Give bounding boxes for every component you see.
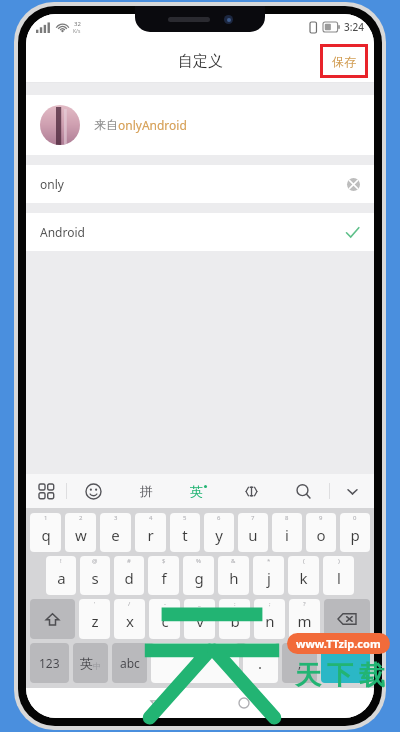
button[interactable]: 0: [340, 513, 370, 552]
button[interactable]: $: [148, 556, 179, 595]
button[interactable]: .: [243, 643, 278, 683]
button[interactable]: -: [149, 599, 180, 639]
button[interactable]: 8: [272, 513, 302, 552]
button[interactable]: *: [253, 556, 284, 595]
staticText: &: [231, 557, 236, 565]
staticText: 32: [74, 20, 81, 28]
button[interactable]: 5: [170, 513, 200, 552]
button[interactable]: 保存: [323, 47, 365, 75]
button[interactable]: 6: [204, 513, 234, 552]
staticText: u: [248, 525, 258, 545]
button[interactable]: only: [26, 165, 374, 203]
staticText: 5: [183, 514, 187, 522]
button[interactable]: &: [218, 556, 249, 595]
staticText: ': [94, 600, 96, 608]
staticText: a: [57, 568, 66, 588]
staticText: 载: [359, 659, 385, 692]
button[interactable]: Enter: [321, 643, 370, 683]
button[interactable]: ;: [254, 599, 285, 639]
staticText: :: [234, 600, 236, 608]
staticText: i: [285, 525, 289, 545]
button[interactable]: Input mode: [225, 474, 277, 508]
staticText: 保存: [332, 54, 356, 69]
staticText: Android: [40, 224, 85, 240]
staticText: ?: [303, 600, 306, 608]
button[interactable]: Keyboard menu: [26, 474, 66, 508]
staticText: g: [194, 568, 204, 588]
staticText: q: [41, 525, 51, 545]
staticText: @: [92, 557, 98, 565]
button[interactable]: 7: [238, 513, 268, 552]
staticText: h: [229, 568, 239, 588]
staticText: p: [350, 525, 360, 545]
staticText: ;: [269, 600, 271, 608]
staticText: b: [230, 611, 240, 631]
button[interactable]: ): [323, 556, 354, 595]
button[interactable]: ,: [282, 643, 317, 683]
staticText: r: [147, 525, 154, 545]
staticText: 8: [285, 514, 289, 522]
staticText: 3:24: [344, 20, 364, 34]
staticText: o: [316, 525, 326, 545]
button[interactable]: abc: [112, 643, 147, 683]
button[interactable]: Hide keyboard: [330, 474, 374, 508]
button[interactable]: 来自: [26, 95, 374, 155]
button[interactable]: Android: [26, 213, 374, 251]
button[interactable]: %: [183, 556, 214, 595]
staticText: n: [265, 611, 275, 631]
staticText: 3: [114, 514, 118, 522]
button[interactable]: Home: [200, 688, 287, 718]
staticText: 2: [79, 514, 83, 522]
button[interactable]: !: [46, 556, 76, 595]
button[interactable]: 123: [30, 643, 69, 683]
button[interactable]: 英: [173, 474, 225, 508]
button[interactable]: :: [219, 599, 250, 639]
button[interactable]: 拼: [120, 474, 173, 508]
button[interactable]: Backspace: [324, 599, 370, 639]
staticText: f: [161, 568, 167, 588]
button[interactable]: #: [114, 556, 144, 595]
button[interactable]: ?: [289, 599, 320, 639]
staticText: %: [196, 557, 201, 565]
staticText: c: [161, 611, 169, 631]
staticText: *: [267, 557, 271, 565]
button[interactable]: /: [114, 599, 145, 639]
button[interactable]: 3: [100, 513, 131, 552]
staticText: !: [60, 557, 62, 565]
button[interactable]: 9: [306, 513, 336, 552]
staticText: x: [126, 611, 134, 631]
staticText: 6: [217, 514, 221, 522]
staticText: y: [215, 525, 223, 545]
staticText: /: [128, 600, 131, 608]
button[interactable]: Shift: [30, 599, 75, 639]
button[interactable]: Back: [113, 688, 200, 718]
staticText: 4: [149, 514, 153, 522]
staticText: 自定义: [178, 52, 223, 71]
button[interactable]: 1: [30, 513, 61, 552]
staticText: t: [182, 525, 188, 545]
button[interactable]: 2: [65, 513, 96, 552]
button[interactable]: (: [288, 556, 319, 595]
staticText: l: [337, 568, 341, 588]
staticText: m: [297, 611, 312, 631]
button[interactable]: _: [184, 599, 215, 639]
button[interactable]: ': [79, 599, 110, 639]
staticText: .: [258, 653, 263, 673]
staticText: 来自: [94, 117, 118, 132]
staticText: ,: [298, 655, 302, 671]
staticText: 英: [80, 655, 93, 671]
staticText: 下: [327, 659, 353, 692]
staticText: 0: [353, 514, 357, 522]
staticText: 123: [39, 655, 60, 671]
staticText: z: [91, 611, 99, 631]
staticText: K/s: [73, 28, 81, 35]
staticText: s: [91, 568, 99, 588]
staticText: 1: [44, 514, 48, 522]
button[interactable]: 4: [135, 513, 166, 552]
button[interactable]: Space: [151, 643, 239, 683]
staticText: (: [303, 557, 305, 565]
button[interactable]: 英: [73, 643, 108, 683]
button[interactable]: Search: [277, 474, 329, 508]
button[interactable]: Emoji: [67, 474, 120, 508]
button[interactable]: @: [80, 556, 110, 595]
